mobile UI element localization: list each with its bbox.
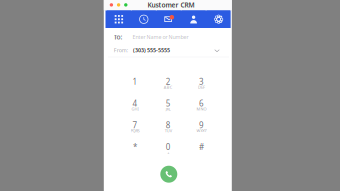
button[interactable]: 8 xyxy=(153,117,184,137)
staticText: 1 xyxy=(132,76,137,87)
staticText: 6 xyxy=(199,98,204,109)
staticText: * xyxy=(133,142,137,152)
button[interactable]: # xyxy=(186,139,217,159)
staticText: ABC xyxy=(164,84,173,90)
staticText: To: xyxy=(113,33,122,41)
staticText: (303) 555-5555 xyxy=(133,47,170,54)
staticText: DEF xyxy=(198,84,205,90)
button[interactable]: Messages xyxy=(157,10,181,28)
staticText: # xyxy=(199,142,204,152)
staticText: TUV xyxy=(165,128,172,133)
button[interactable]: 0 xyxy=(153,139,184,159)
button[interactable]: 6 xyxy=(186,95,217,115)
staticText: WXYZ xyxy=(196,128,206,133)
staticText: 3 xyxy=(199,76,204,87)
button[interactable]: 7 xyxy=(119,117,150,137)
button[interactable]: Settings xyxy=(207,10,231,28)
staticText: 0 xyxy=(166,142,171,152)
button[interactable]: 4 xyxy=(119,95,150,115)
staticText: GHI xyxy=(131,106,138,112)
button[interactable]: 5 xyxy=(153,95,184,115)
staticText: 8 xyxy=(166,120,171,130)
button[interactable]: 2 xyxy=(153,74,184,94)
button[interactable]: Recents xyxy=(132,10,156,28)
button[interactable]: Keypad xyxy=(107,10,131,28)
staticText: 2 xyxy=(166,76,171,87)
staticText: JKL xyxy=(166,106,171,112)
staticText: 5 xyxy=(166,98,171,109)
staticText: 4 xyxy=(132,98,137,109)
button[interactable]: 3 xyxy=(186,74,217,94)
staticText: 9 xyxy=(199,120,204,130)
staticText: PQRS xyxy=(130,128,139,133)
staticText: From: xyxy=(114,47,128,54)
button[interactable]: * xyxy=(119,139,150,159)
staticText: 7 xyxy=(132,120,137,130)
button[interactable]: 9 xyxy=(186,117,217,137)
button[interactable]: Enter Name or Number xyxy=(135,32,227,42)
button[interactable]: (303) 555-5555 xyxy=(134,45,230,56)
button[interactable]: Contacts xyxy=(182,10,206,28)
button[interactable]: 1 xyxy=(119,74,150,94)
staticText: MNO xyxy=(196,106,206,112)
staticText: Kustomer CRM xyxy=(147,1,194,9)
staticText: Enter Name or Number xyxy=(132,33,188,41)
button[interactable]: Call xyxy=(159,164,179,184)
staticText: + xyxy=(167,150,169,155)
